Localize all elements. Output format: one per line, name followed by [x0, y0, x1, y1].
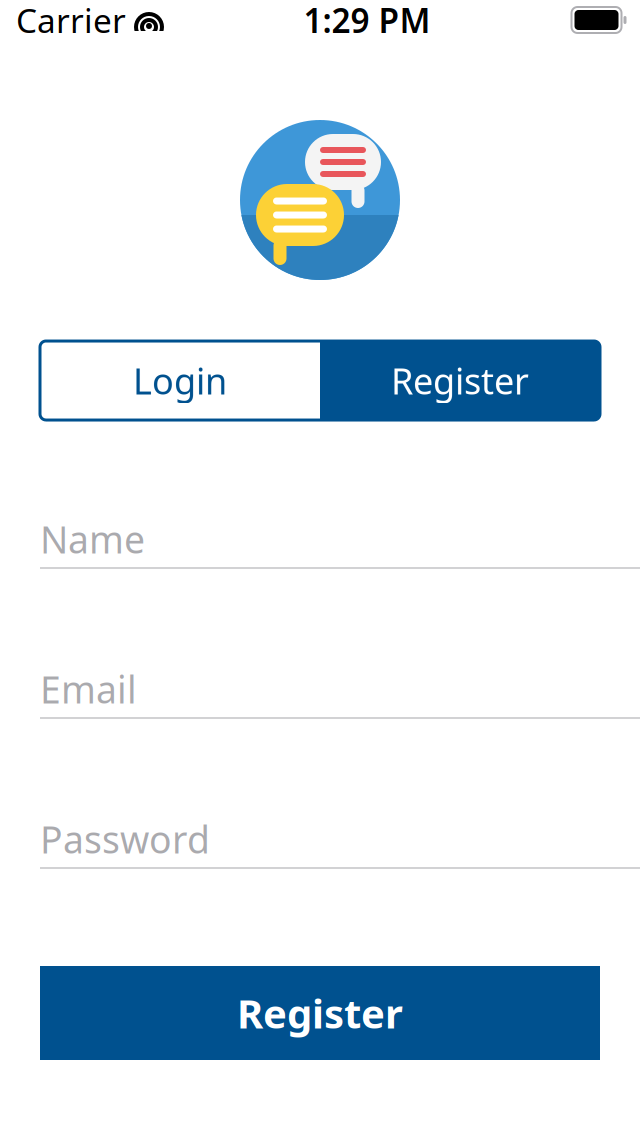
- button[interactable]: Login: [40, 341, 320, 420]
- button[interactable]: Register: [40, 966, 600, 1060]
- staticText: Email: [40, 664, 137, 714]
- staticText: 1:29 PM: [303, 0, 430, 42]
- staticText: Carrier: [16, 0, 126, 42]
- button[interactable]: Email: [40, 661, 640, 719]
- button[interactable]: Register: [320, 341, 600, 420]
- button[interactable]: Password: [40, 811, 640, 869]
- staticText: Register: [391, 357, 529, 404]
- button[interactable]: Name: [40, 511, 640, 569]
- staticText: Register: [237, 986, 403, 1039]
- staticText: Login: [133, 357, 227, 404]
- staticText: Password: [40, 814, 210, 864]
- staticText: Name: [40, 514, 145, 564]
